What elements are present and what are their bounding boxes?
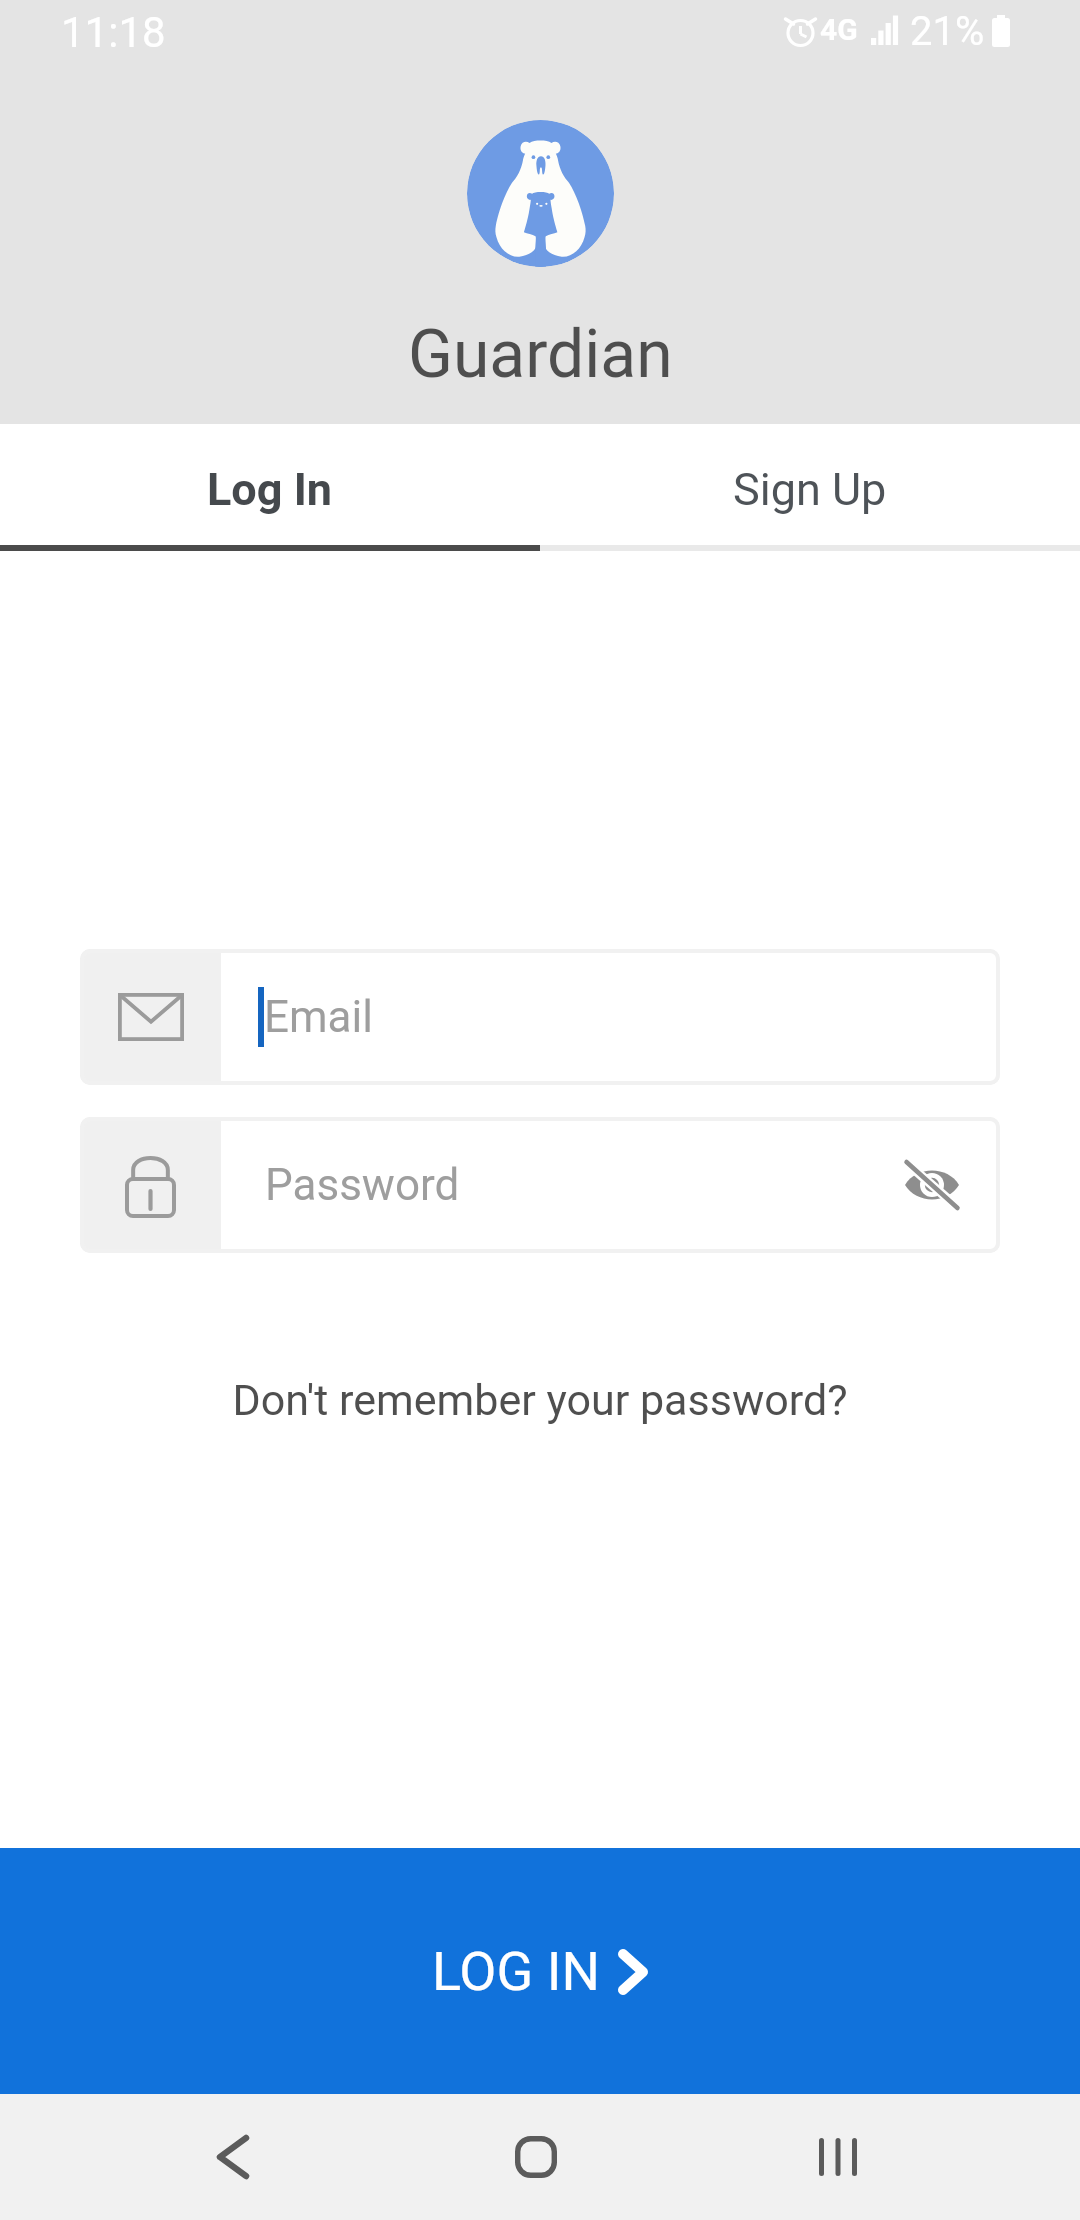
button[interactable]: LOG IN	[0, 1848, 1080, 2094]
button[interactable]: Sign Up	[540, 424, 1080, 545]
staticText: 11:18	[61, 8, 166, 57]
staticText: Guardian	[408, 316, 673, 393]
button[interactable]: Back	[175, 2094, 291, 2220]
staticText: LOG IN	[432, 1940, 600, 2003]
staticText: 21%	[910, 8, 985, 55]
staticText: Sign Up	[733, 463, 887, 516]
staticText: Log In	[207, 463, 333, 516]
button[interactable]: Home	[478, 2094, 594, 2220]
button[interactable]: Email	[80, 949, 1000, 1085]
button[interactable]: Password	[80, 1117, 1000, 1253]
staticText: 4G	[820, 12, 858, 47]
staticText: Password	[265, 1159, 460, 1211]
button[interactable]: Log In	[0, 424, 540, 545]
button[interactable]: Recents	[780, 2094, 896, 2220]
staticText: Email	[264, 991, 373, 1043]
button[interactable]: Don't remember your password?	[0, 1375, 1080, 1425]
button[interactable]: Show password	[893, 1146, 971, 1224]
